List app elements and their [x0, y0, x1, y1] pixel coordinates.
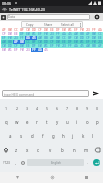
- button[interactable]: Recent apps: [69, 172, 103, 183]
- staticText: A0: [74, 32, 78, 36]
- button[interactable]: f: [38, 130, 48, 141]
- button[interactable]: 8: [72, 103, 82, 114]
- staticText: EE: [50, 28, 54, 32]
- button[interactable]: 4: [32, 103, 42, 114]
- button[interactable]: a: [5, 130, 16, 141]
- button[interactable]: s: [16, 130, 27, 141]
- button[interactable]: v: [44, 144, 56, 155]
- staticText: d: [31, 133, 34, 139]
- button[interactable]: Select all: [58, 21, 77, 28]
- staticText: type HEX command: [4, 92, 35, 96]
- staticText: Select all: [61, 23, 74, 27]
- button[interactable]: Shift: [1, 144, 11, 155]
- staticText: ,: [15, 160, 17, 165]
- button[interactable]: Emoji: [19, 157, 27, 168]
- staticText: g: [52, 133, 55, 139]
- button[interactable]: More options: [77, 21, 83, 28]
- staticText: F0: [8, 36, 12, 40]
- staticText: 08:06: [2, 1, 11, 6]
- button[interactable]: Data: [7, 14, 90, 20]
- button[interactable]: 9: [82, 103, 92, 114]
- staticText: EE: [14, 32, 18, 36]
- button[interactable]: Comma: [12, 157, 19, 168]
- button[interactable]: d: [27, 130, 38, 141]
- button[interactable]: e: [22, 116, 32, 127]
- staticText: o: [86, 119, 89, 125]
- staticText: EF: [2, 36, 6, 40]
- button[interactable]: q: [1, 116, 12, 127]
- staticText: 8: [76, 106, 79, 111]
- staticText: BB: [80, 32, 84, 36]
- button[interactable]: 2: [12, 103, 22, 114]
- staticText: B0: [92, 32, 96, 36]
- button[interactable]: k: [78, 130, 88, 141]
- button[interactable]: o: [82, 116, 92, 127]
- button[interactable]: h: [58, 130, 68, 141]
- button[interactable]: Send: [91, 90, 101, 97]
- button[interactable]: Settings: [91, 13, 102, 21]
- button[interactable]: 0: [92, 103, 102, 114]
- button[interactable]: j: [68, 130, 78, 141]
- staticText: 23: [86, 28, 90, 32]
- button[interactable]: r: [32, 116, 42, 127]
- staticText: D0: [56, 40, 60, 44]
- button[interactable]: Copy: [21, 21, 39, 28]
- button[interactable]: Connection: [1, 15, 6, 20]
- button[interactable]: x: [22, 144, 33, 155]
- staticText: EE: [62, 40, 66, 44]
- staticText: 01: [68, 28, 72, 32]
- staticText: E0: [74, 40, 78, 44]
- staticText: h: [62, 133, 65, 139]
- staticText: BF: [68, 36, 72, 40]
- button[interactable]: type HEX command: [2, 90, 89, 97]
- button[interactable]: English: [27, 159, 84, 166]
- staticText: 9: [86, 106, 89, 111]
- button[interactable]: b: [56, 144, 68, 155]
- staticText: EE: [26, 44, 30, 48]
- staticText: DF: [32, 44, 36, 48]
- button[interactable]: c: [33, 144, 44, 155]
- staticText: D0: [92, 36, 96, 40]
- button[interactable]: ?123: [1, 157, 12, 168]
- button[interactable]: Home: [35, 172, 69, 183]
- button[interactable]: Enter: [91, 157, 102, 168]
- button[interactable]: u: [62, 116, 72, 127]
- button[interactable]: 7: [62, 103, 72, 114]
- button[interactable]: i: [72, 116, 82, 127]
- staticText: AF: [14, 40, 18, 44]
- staticText: AA: [74, 44, 78, 48]
- staticText: C0: [74, 36, 78, 40]
- button[interactable]: g: [48, 130, 58, 141]
- button[interactable]: w: [12, 116, 22, 127]
- button[interactable]: 6: [52, 103, 62, 114]
- staticText: FF: [68, 44, 72, 48]
- staticText: 23: [14, 36, 18, 40]
- button[interactable]: z: [11, 144, 22, 155]
- button[interactable]: 1: [1, 103, 12, 114]
- staticText: EF: [14, 48, 18, 52]
- staticText: A0: [2, 40, 6, 44]
- button[interactable]: Back: [0, 172, 35, 183]
- staticText: C0: [38, 40, 42, 44]
- staticText: 45: [80, 44, 84, 48]
- button[interactable]: Backspace: [92, 144, 102, 155]
- button[interactable]: m: [80, 144, 92, 155]
- staticText: DD: [44, 40, 48, 44]
- button[interactable]: 3: [22, 103, 32, 114]
- button[interactable]: Share: [39, 21, 58, 28]
- staticText: 23: [26, 48, 30, 52]
- button[interactable]: p: [92, 116, 102, 127]
- button[interactable]: y: [52, 116, 62, 127]
- button[interactable]: t: [42, 116, 52, 127]
- button[interactable]: l: [88, 130, 98, 141]
- staticText: t: [46, 119, 48, 125]
- staticText: E0: [38, 44, 42, 48]
- staticText: D0: [8, 32, 12, 36]
- button[interactable]: n: [68, 144, 80, 155]
- staticText: AF: [2, 28, 6, 32]
- staticText: 2: [16, 106, 19, 111]
- button[interactable]: 5: [42, 103, 52, 114]
